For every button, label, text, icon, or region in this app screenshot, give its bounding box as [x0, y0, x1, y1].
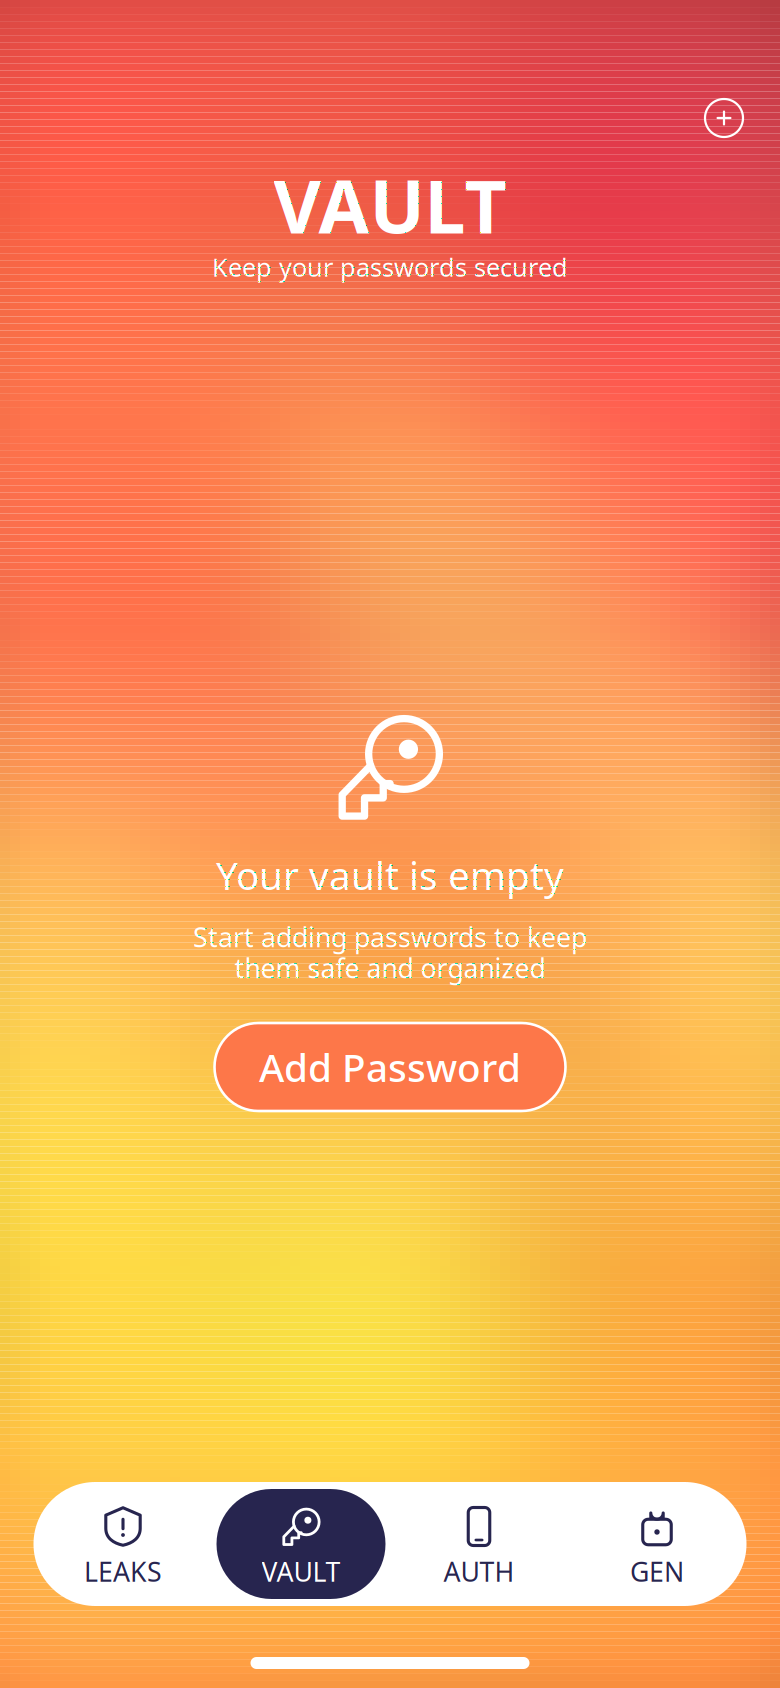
staticText: AUTH: [443, 1554, 514, 1589]
staticText: Add Password: [259, 1041, 521, 1093]
staticText: VAULT: [261, 1554, 340, 1589]
staticText: them safe and organized: [234, 950, 545, 986]
staticText: GEN: [630, 1554, 684, 1589]
staticText: Your vault is empty: [216, 849, 564, 901]
button[interactable]: LEAKS: [34, 1482, 212, 1606]
staticText: Keep your passwords secured: [212, 250, 568, 284]
staticText: VAULT: [273, 156, 506, 254]
button[interactable]: AUTH: [390, 1482, 568, 1606]
button[interactable]: GEN: [568, 1482, 746, 1606]
staticText: Start adding passwords to keep: [193, 919, 587, 955]
button[interactable]: Add Password: [214, 1023, 565, 1111]
button[interactable]: VAULT: [212, 1482, 390, 1606]
button[interactable]: Add password: [694, 88, 754, 148]
staticText: LEAKS: [84, 1554, 162, 1589]
